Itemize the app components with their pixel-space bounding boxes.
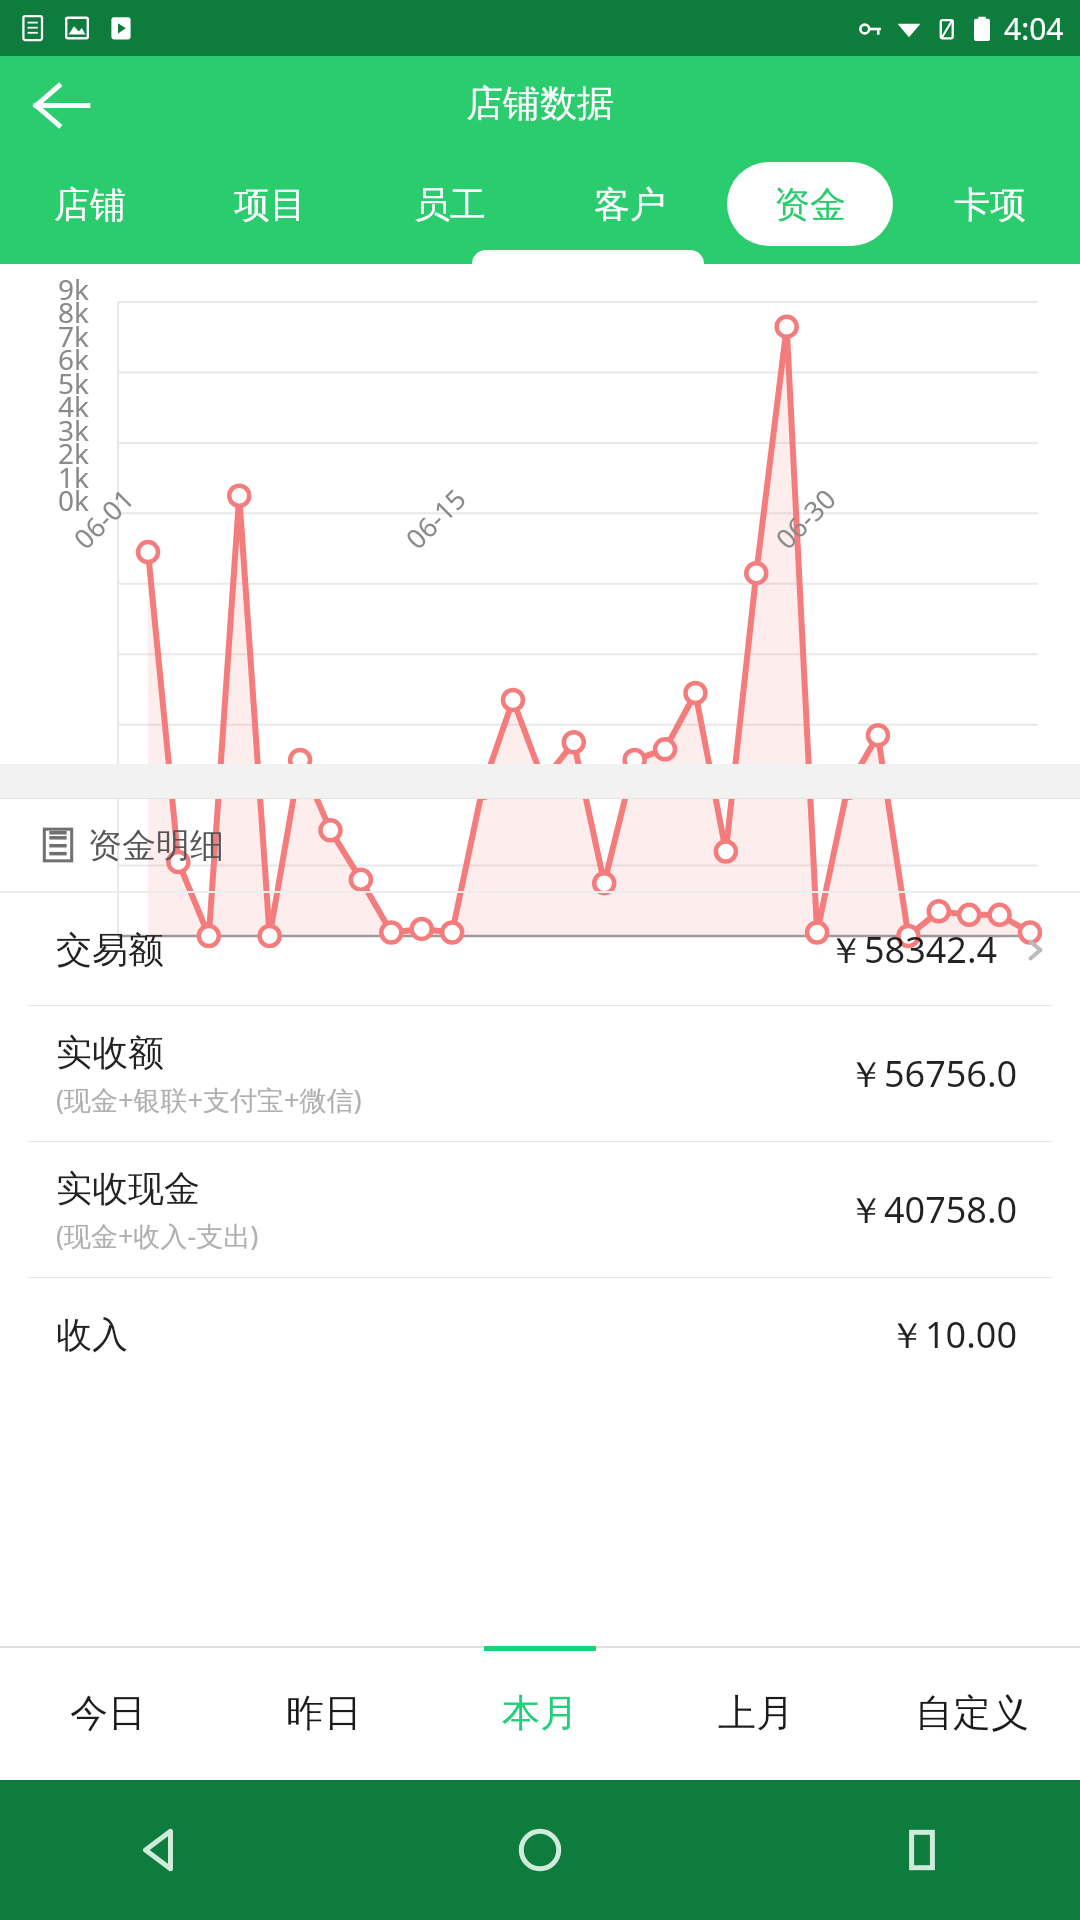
staticText: 7k [58, 317, 89, 355]
button[interactable]: 交易额 [0, 893, 1080, 1005]
staticText: 实收额 [56, 1030, 164, 1075]
button[interactable]: Back [110, 1802, 206, 1898]
button[interactable]: 上月 [648, 1646, 864, 1780]
staticText: 8k [58, 293, 89, 331]
staticText: 实收现金 [56, 1166, 200, 1211]
staticText: 员工 [414, 182, 486, 227]
staticText: 9k [58, 270, 89, 308]
staticText: 上月 [718, 1689, 794, 1737]
staticText: (现金+收入-支出) [56, 1217, 259, 1254]
staticText: (现金+银联+支付宝+微信) [56, 1081, 362, 1118]
button[interactable]: 实收额 [0, 1006, 1080, 1141]
button[interactable]: Recents [874, 1802, 970, 1898]
staticText: 收入 [56, 1312, 128, 1357]
button[interactable]: 今日 [0, 1646, 216, 1780]
staticText: 4:04 [1004, 8, 1064, 49]
button[interactable]: 资金 [720, 162, 900, 246]
button[interactable]: 店铺 [0, 162, 180, 246]
button[interactable]: Back [24, 66, 100, 142]
staticText: ￥10.00 [889, 1310, 1018, 1359]
staticText: 1k [58, 458, 89, 496]
staticText: 资金 [774, 182, 846, 227]
staticText: 本月 [502, 1689, 578, 1737]
button[interactable]: 员工 [360, 162, 540, 246]
button[interactable]: Home [492, 1802, 588, 1898]
staticText: 06-15 [397, 480, 474, 557]
staticText: 自定义 [915, 1689, 1029, 1737]
staticText: ￥40758.0 [848, 1185, 1018, 1234]
staticText: 0k [58, 481, 89, 519]
staticText: 今日 [70, 1689, 146, 1737]
button[interactable]: 客户 [540, 162, 720, 246]
button[interactable]: 昨日 [216, 1646, 432, 1780]
staticText: ￥58342.4 [828, 925, 998, 974]
button[interactable]: 收入 [0, 1278, 1080, 1390]
button[interactable]: 实收现金 [0, 1142, 1080, 1277]
staticText: 客户 [594, 182, 666, 227]
button[interactable]: 自定义 [864, 1646, 1080, 1780]
staticText: 卡项 [954, 182, 1026, 227]
staticText: 店铺 [54, 182, 126, 227]
staticText: 5k [58, 364, 89, 402]
staticText: 4k [58, 387, 89, 425]
staticText: 店铺数据 [466, 80, 614, 127]
staticText: 资金明细 [88, 824, 224, 867]
button[interactable]: 项目 [180, 162, 360, 246]
staticText: 项目 [234, 182, 306, 227]
staticText: 06-01 [65, 480, 142, 557]
staticText: 2k [58, 434, 89, 472]
staticText: 3k [58, 411, 89, 449]
staticText: ￥56756.0 [848, 1049, 1018, 1098]
button[interactable]: 卡项 [900, 162, 1080, 246]
button[interactable]: 本月 [432, 1646, 648, 1780]
staticText: 6k [58, 340, 89, 378]
staticText: 交易额 [56, 927, 164, 972]
staticText: 昨日 [286, 1689, 362, 1737]
staticText: 06-30 [767, 480, 844, 557]
